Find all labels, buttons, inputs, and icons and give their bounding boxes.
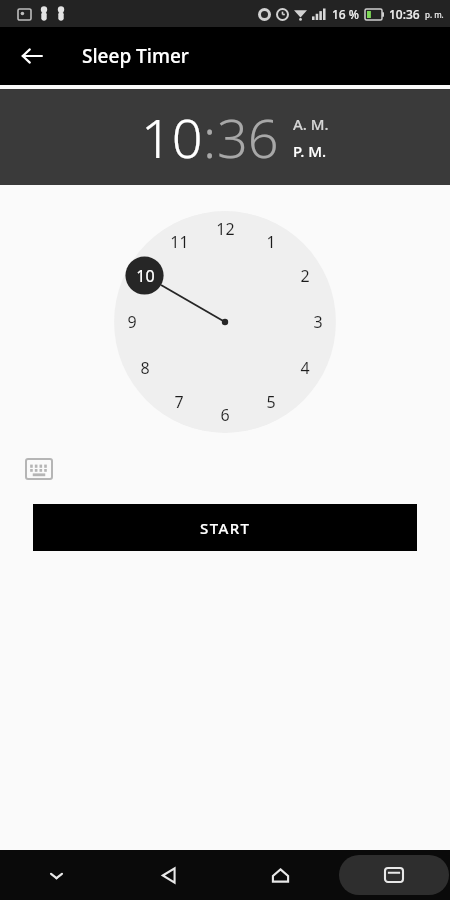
staticText: 10 [136,265,155,287]
staticText: : [203,100,217,174]
staticText: 1 [266,231,276,253]
staticText: 2 [300,265,310,287]
button[interactable]: Clock face hour picker [109,206,341,438]
staticText: 7 [174,391,184,413]
staticText: 36 [217,100,279,174]
staticText: Sleep Timer [82,43,189,69]
button[interactable]: Hide keyboard [0,850,112,900]
staticText: 6 [220,404,230,426]
staticText: p. m. [425,9,444,20]
staticText: 5 [266,391,276,413]
button[interactable]: Recent apps [339,855,449,895]
staticText: 3 [313,311,323,333]
staticText: P. M. [293,141,327,161]
button[interactable]: P. M. [293,141,327,161]
button[interactable]: Home [224,850,337,900]
staticText: 10:36 [389,6,420,22]
staticText: START [200,518,251,538]
staticText: 16 % [332,6,360,22]
staticText: 8 [140,357,150,379]
staticText: 12 [216,218,235,240]
staticText: 10 [141,100,203,174]
staticText: 4 [300,357,310,379]
button[interactable]: 10 [141,100,203,174]
button[interactable]: 36 [217,100,279,174]
staticText: 9 [127,311,137,333]
staticText: A. M. [293,114,329,134]
staticText: 11 [170,231,189,253]
button[interactable]: Switch to keyboard input [26,459,52,479]
button[interactable]: Back [112,850,224,900]
button[interactable]: START [33,504,417,551]
button[interactable]: A. M. [293,114,329,134]
button[interactable]: Back [12,36,52,76]
